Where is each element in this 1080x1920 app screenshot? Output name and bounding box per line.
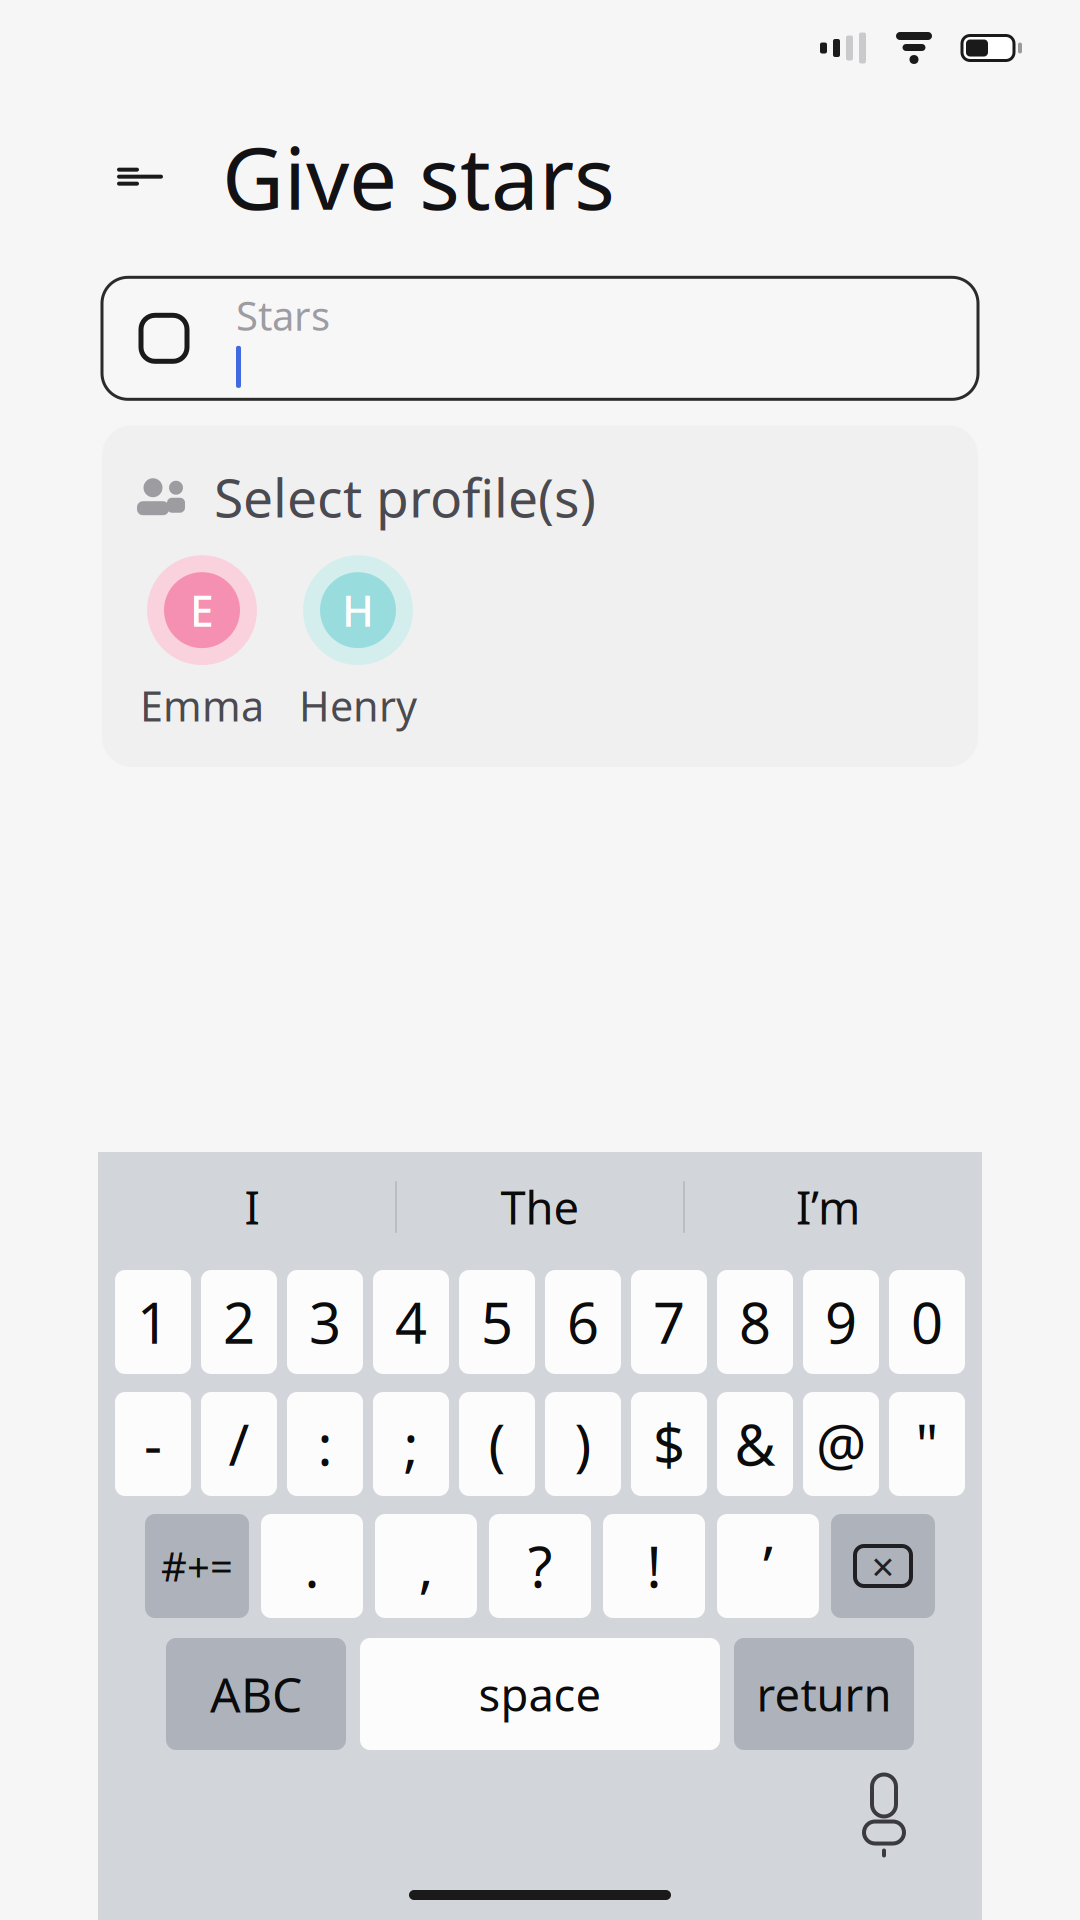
- button[interactable]: Stars: [102, 277, 978, 399]
- button[interactable]: ): [545, 1392, 621, 1496]
- button[interactable]: @: [803, 1392, 879, 1496]
- staticText: ×: [871, 1539, 894, 1592]
- staticText: &: [734, 1407, 775, 1481]
- button[interactable]: ?: [489, 1514, 591, 1618]
- staticText: I: [244, 1177, 259, 1237]
- staticText: !: [646, 1529, 661, 1603]
- staticText: ?: [528, 1529, 552, 1603]
- button[interactable]: !: [603, 1514, 705, 1618]
- staticText: 2: [223, 1285, 255, 1359]
- staticText: $: [653, 1407, 685, 1481]
- staticText: 4: [395, 1285, 427, 1359]
- staticText: Stars: [236, 289, 330, 342]
- button[interactable]: 0: [889, 1270, 965, 1374]
- staticText: @: [816, 1407, 866, 1481]
- staticText: 6: [567, 1285, 599, 1359]
- button[interactable]: -: [115, 1392, 191, 1496]
- staticText: space: [478, 1664, 601, 1724]
- staticText: ABC: [210, 1662, 302, 1726]
- staticText: ’: [763, 1529, 773, 1603]
- button[interactable]: return: [734, 1638, 914, 1750]
- staticText: 3: [309, 1285, 341, 1359]
- button[interactable]: I’m: [685, 1152, 971, 1262]
- staticText: Select profile(s): [214, 461, 596, 532]
- staticText: .: [304, 1529, 319, 1603]
- staticText: 7: [653, 1285, 685, 1359]
- button[interactable]: 3: [287, 1270, 363, 1374]
- button[interactable]: $: [631, 1392, 707, 1496]
- button[interactable]: .: [261, 1514, 363, 1618]
- button[interactable]: /: [201, 1392, 277, 1496]
- button[interactable]: Dictation: [844, 1768, 924, 1864]
- staticText: 8: [739, 1285, 771, 1359]
- staticText: ;: [403, 1407, 418, 1481]
- staticText: :: [317, 1407, 332, 1481]
- button[interactable]: ;: [373, 1392, 449, 1496]
- staticText: E: [190, 582, 214, 638]
- staticText: Emma: [140, 678, 264, 733]
- staticText: Henry: [299, 678, 417, 733]
- staticText: H: [342, 582, 374, 638]
- staticText: The: [500, 1177, 579, 1237]
- button[interactable]: The: [397, 1152, 683, 1262]
- button[interactable]: ’: [717, 1514, 819, 1618]
- staticText: -: [144, 1407, 162, 1481]
- button[interactable]: 4: [373, 1270, 449, 1374]
- button[interactable]: 7: [631, 1270, 707, 1374]
- button[interactable]: :: [287, 1392, 363, 1496]
- button[interactable]: 5: [459, 1270, 535, 1374]
- button[interactable]: ": [889, 1392, 965, 1496]
- staticText: 9: [825, 1285, 857, 1359]
- staticText: Give stars: [222, 120, 615, 233]
- staticText: /: [228, 1407, 249, 1481]
- button[interactable]: 6: [545, 1270, 621, 1374]
- button[interactable]: space: [360, 1638, 720, 1750]
- staticText: 5: [481, 1285, 513, 1359]
- button[interactable]: Back: [100, 137, 180, 217]
- staticText: 1: [137, 1285, 169, 1359]
- button[interactable]: #+=: [145, 1514, 249, 1618]
- staticText: 0: [911, 1285, 943, 1359]
- button[interactable]: 9: [803, 1270, 879, 1374]
- button[interactable]: &: [717, 1392, 793, 1496]
- button[interactable]: ,: [375, 1514, 477, 1618]
- button[interactable]: Delete: [831, 1514, 935, 1618]
- staticText: ": [915, 1407, 938, 1481]
- staticText: ): [574, 1407, 591, 1481]
- staticText: (: [488, 1407, 505, 1481]
- button[interactable]: 8: [717, 1270, 793, 1374]
- button[interactable]: 1: [115, 1270, 191, 1374]
- button[interactable]: 2: [201, 1270, 277, 1374]
- staticText: ,: [418, 1529, 433, 1603]
- button[interactable]: ABC: [166, 1638, 346, 1750]
- button[interactable]: I: [109, 1152, 395, 1262]
- staticText: I’m: [796, 1177, 860, 1237]
- button[interactable]: H: [280, 552, 436, 733]
- button[interactable]: (: [459, 1392, 535, 1496]
- button[interactable]: E: [124, 552, 280, 733]
- staticText: #+=: [161, 1539, 233, 1592]
- staticText: return: [756, 1664, 891, 1724]
